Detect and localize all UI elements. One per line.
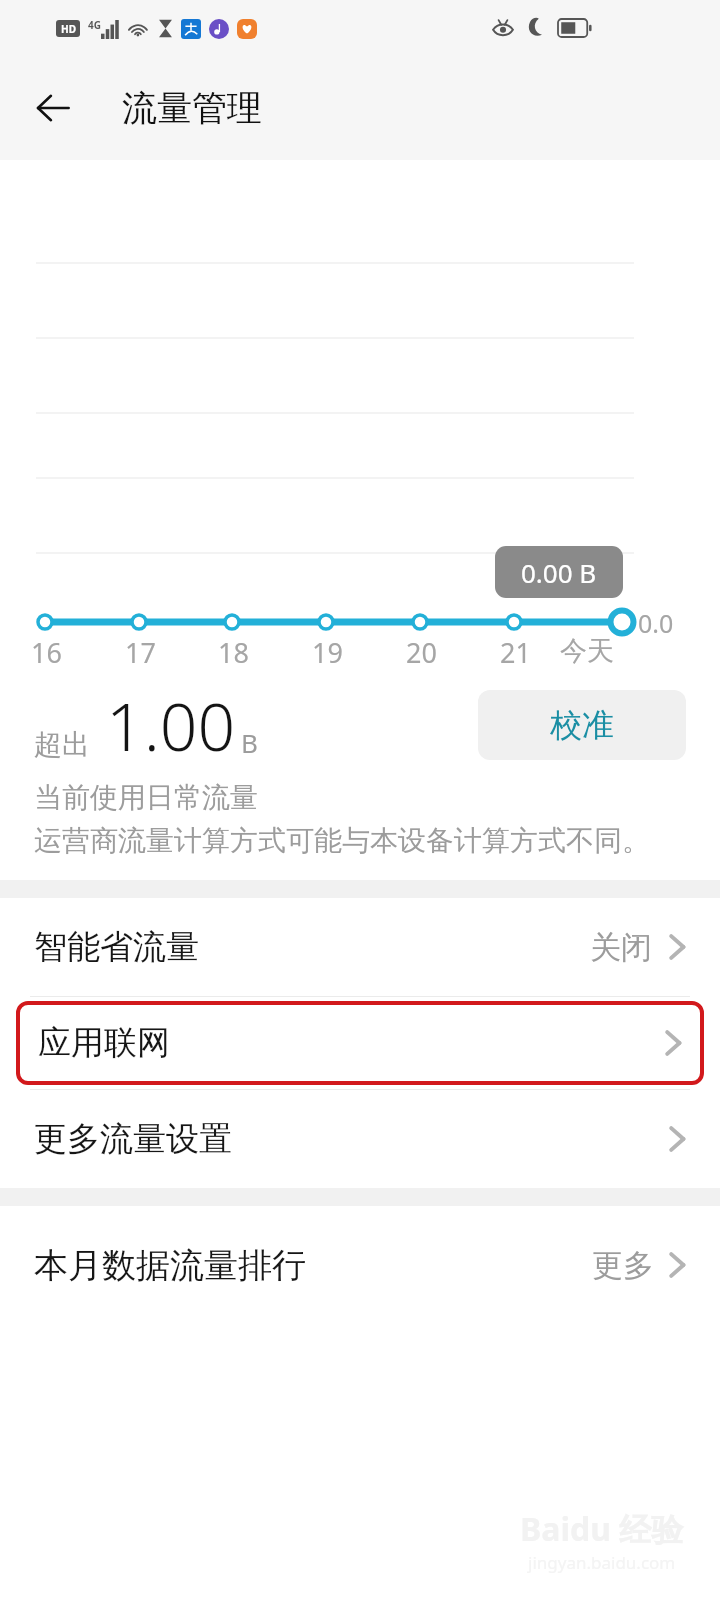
staticText: HD	[61, 22, 76, 36]
staticText: 当前使用日常流量	[34, 780, 258, 815]
staticText: 应用联网	[38, 1022, 664, 1064]
staticText: 今天	[560, 634, 614, 668]
staticText: 关闭	[590, 928, 652, 967]
staticText: 21	[500, 634, 531, 671]
button[interactable]: 更多流量设置	[0, 1090, 720, 1188]
staticText: B	[241, 725, 258, 760]
staticText: 17	[125, 634, 156, 671]
button[interactable]: 本月数据流量排行	[0, 1206, 720, 1324]
staticText: 0.00 B	[521, 555, 597, 590]
staticText: 更多	[592, 1246, 654, 1285]
staticText: 本月数据流量排行	[34, 1244, 592, 1287]
button[interactable]: Back	[22, 77, 84, 139]
staticText: Baidu 经验	[520, 1507, 684, 1551]
staticText: 流量管理	[122, 86, 262, 130]
staticText: jingyan.baidu.com	[528, 1551, 676, 1574]
staticText: 18	[218, 634, 249, 671]
staticText: 校准	[550, 705, 614, 745]
staticText: 超出	[34, 727, 90, 762]
staticText: 19	[312, 634, 343, 671]
staticText: 0.0	[638, 606, 674, 640]
staticText: 智能省流量	[34, 926, 590, 968]
staticText: 运营商流量计算方式可能与本设备计算方式不同。	[34, 823, 650, 858]
button[interactable]: 智能省流量	[0, 898, 720, 996]
staticText: 1.00	[106, 680, 236, 770]
staticText: 更多流量设置	[34, 1118, 668, 1160]
button[interactable]: 应用联网	[16, 1001, 704, 1085]
button[interactable]: 校准	[478, 690, 686, 760]
staticText: 4G	[88, 18, 101, 32]
staticText: 16	[31, 634, 62, 671]
staticText: 20	[406, 634, 437, 671]
